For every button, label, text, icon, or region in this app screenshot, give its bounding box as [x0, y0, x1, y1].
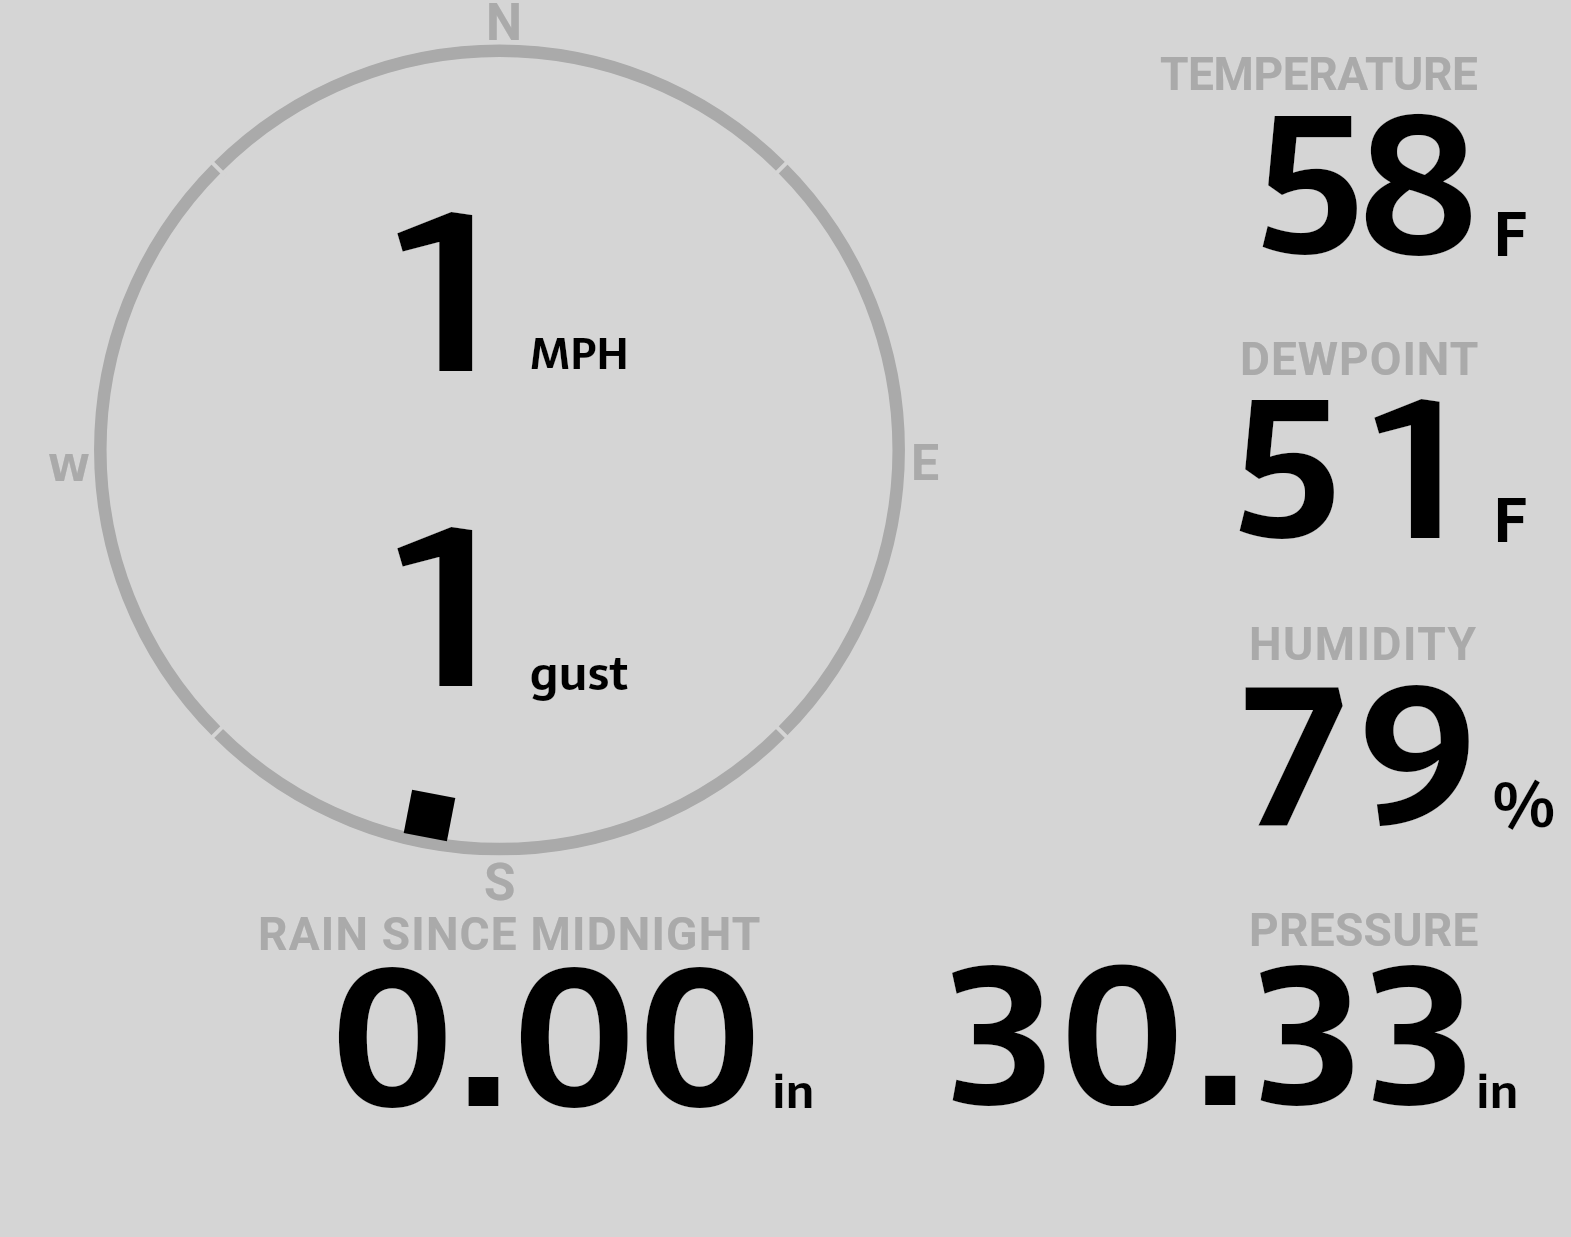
staticText: in: [772, 1054, 815, 1129]
staticText: 30.33: [947, 876, 1480, 1106]
staticText: %: [1493, 753, 1555, 856]
staticText: DEWPOINT: [1240, 332, 1480, 386]
staticText: PRESSURE: [1249, 903, 1479, 957]
staticText: HUMIDITY: [1249, 617, 1478, 671]
button[interactable]: Temperature 58 degrees Fahrenheit: [1100, 40, 1571, 270]
staticText: RAIN SINCE MIDNIGHT: [258, 907, 762, 961]
staticText: 1: [396, 110, 492, 474]
staticText: F: [1493, 185, 1527, 284]
staticText: 0.00: [330, 879, 764, 1109]
staticText: in: [1476, 1054, 1519, 1129]
staticText: F: [1493, 471, 1527, 570]
button[interactable]: Dewpoint 51 degrees Fahrenheit: [1100, 325, 1571, 555]
staticText: S: [484, 853, 516, 913]
staticText: MPH: [530, 319, 629, 389]
button[interactable]: Pressure 30.33 inches: [900, 898, 1571, 1128]
staticText: TEMPERATURE: [1160, 47, 1478, 101]
staticText: 79: [1243, 597, 1490, 827]
staticText: 1: [396, 425, 492, 789]
button[interactable]: Humidity 79 percent: [1100, 610, 1571, 840]
staticText: E: [911, 434, 940, 493]
staticText: N: [486, 0, 522, 53]
staticText: 51: [1233, 311, 1488, 541]
button[interactable]: Rain since midnight 0.00 inches: [210, 898, 870, 1128]
staticText: gust: [530, 636, 629, 711]
button[interactable]: Wind speed 1 miles per hour, gusting 1: [95, 50, 905, 850]
staticText: W: [48, 446, 90, 490]
staticText: 58: [1256, 27, 1472, 257]
